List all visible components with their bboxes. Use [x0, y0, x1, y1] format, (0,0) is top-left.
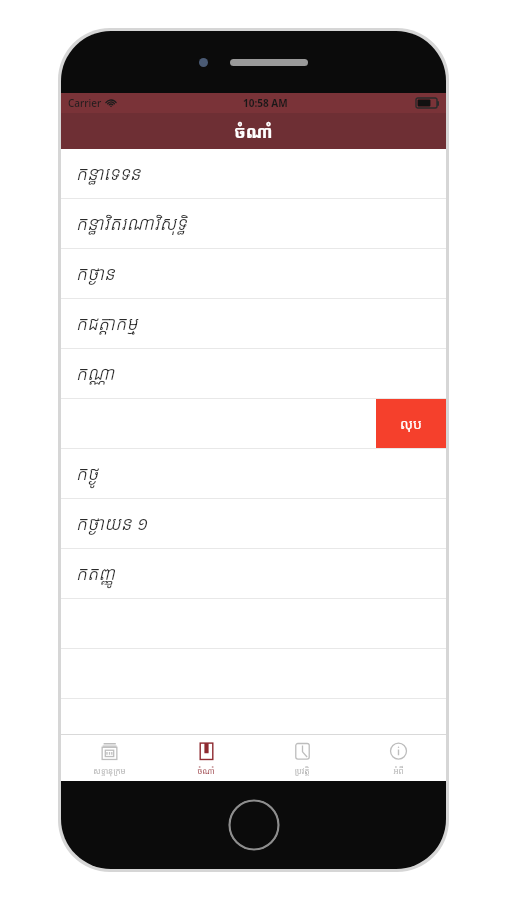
staticText: Carrier	[68, 96, 102, 110]
button[interactable]: កថ្ងូ	[61, 449, 446, 499]
button[interactable]: កថ្ងាន	[61, 249, 446, 299]
staticText: កថ្ងាយន ១	[77, 511, 149, 536]
button[interactable]: ចំណាំ	[158, 735, 254, 781]
staticText: កតញ្ញូ	[77, 563, 117, 584]
staticText: កជត្តាកម្ម	[77, 313, 139, 334]
staticText: កថ្ងាន	[77, 263, 116, 284]
button[interactable]: ប្រវត្តិ	[254, 735, 350, 781]
staticText: ប្រវត្តិ	[294, 765, 310, 776]
staticText: លុប	[400, 414, 422, 433]
staticText: កន្ធាទេទន	[77, 163, 142, 184]
button[interactable]: សទ្ទានុក្រម	[61, 735, 158, 781]
staticText: កណ្ណា	[77, 363, 116, 384]
staticText: 10:58 AM	[243, 96, 288, 110]
staticText: អំពី	[393, 765, 404, 776]
button[interactable]: កន្ធាវិតរណាវិសុទ្ធិ	[61, 199, 446, 249]
button[interactable]: កន្ធាទេទន	[61, 149, 446, 199]
button[interactable]: កតញ្ញូ	[61, 549, 446, 599]
button[interactable]: កណ្ណា	[61, 349, 446, 399]
button[interactable]: កថ្ងាយន ១	[61, 499, 446, 549]
staticText: ចំណាំ	[197, 765, 215, 776]
staticText: កថ្ងូ	[77, 463, 100, 484]
button[interactable]: អំពី	[350, 735, 446, 781]
button[interactable]: លុប	[376, 399, 446, 448]
staticText: កន្ធាវិតរណាវិសុទ្ធិ	[77, 213, 188, 234]
button[interactable]: កជត្តាកម្ម	[61, 299, 446, 349]
staticText: សទ្ទានុក្រម	[93, 765, 126, 776]
staticText: ចំណាំ	[234, 120, 273, 143]
